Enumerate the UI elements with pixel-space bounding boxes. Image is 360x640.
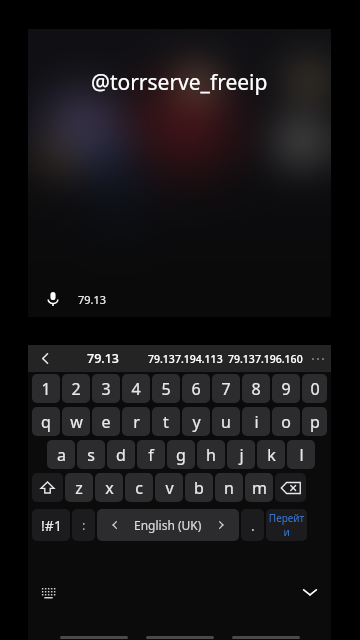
button[interactable]: 6 — [182, 374, 210, 403]
staticText: c — [135, 477, 143, 499]
staticText: l — [299, 444, 304, 466]
button[interactable]: u — [212, 407, 240, 436]
button[interactable]: z — [65, 473, 93, 502]
staticText: i — [254, 411, 259, 433]
staticText: 2 — [71, 378, 81, 400]
button[interactable]: 4 — [122, 374, 150, 403]
button[interactable]: j — [227, 440, 255, 469]
staticText: q — [41, 411, 51, 433]
button[interactable]: i — [242, 407, 270, 436]
button[interactable]: a — [47, 440, 75, 469]
staticText: 9 — [281, 378, 291, 400]
staticText: 79.137.196.160 — [228, 352, 303, 366]
button[interactable]: 2 — [62, 374, 90, 403]
button[interactable]: 5 — [152, 374, 180, 403]
button[interactable]: 0 — [302, 374, 327, 403]
button[interactable]: g — [167, 440, 195, 469]
staticText: 0 — [310, 378, 320, 400]
button[interactable]: 79.137.196.160 — [226, 345, 304, 372]
button[interactable]: 79.13 — [62, 345, 144, 372]
staticText: 7 — [221, 378, 231, 400]
button[interactable]: English (UK) — [97, 509, 239, 541]
button[interactable]: !#1 — [32, 509, 70, 541]
button[interactable]: 79.137.194.113 — [144, 345, 226, 372]
button[interactable]: k — [257, 440, 285, 469]
button[interactable]: Back — [28, 345, 62, 372]
staticText: s — [87, 444, 95, 466]
button[interactable]: 1 — [32, 374, 60, 403]
staticText: d — [116, 444, 126, 466]
staticText: u — [221, 411, 231, 433]
staticText: w — [70, 411, 83, 433]
staticText: v — [165, 477, 174, 499]
staticText: a — [57, 444, 66, 466]
staticText: English (UK) — [134, 517, 202, 533]
staticText: p — [310, 411, 320, 433]
staticText: e — [101, 411, 111, 433]
staticText: 6 — [191, 378, 201, 400]
staticText: y — [192, 411, 201, 433]
button[interactable]: x — [95, 473, 123, 502]
button[interactable]: b — [185, 473, 213, 502]
button[interactable] — [32, 473, 63, 502]
button[interactable]: More suggestions — [304, 345, 331, 372]
button[interactable]: 9 — [272, 374, 300, 403]
button[interactable]: 8 — [242, 374, 270, 403]
button[interactable]: t — [152, 407, 180, 436]
staticText: n — [224, 477, 234, 499]
button[interactable]: h — [197, 440, 225, 469]
button[interactable]: p — [302, 407, 327, 436]
staticText: r — [133, 411, 140, 433]
button[interactable]: e — [92, 407, 120, 436]
button[interactable]: Перейти — [266, 509, 307, 541]
button[interactable]: 3 — [92, 374, 120, 403]
button[interactable]: Switch keyboard — [34, 578, 62, 606]
button[interactable]: 7 — [212, 374, 240, 403]
button[interactable]: r — [122, 407, 150, 436]
staticText: !#1 — [41, 516, 62, 535]
button[interactable]: d — [107, 440, 135, 469]
button[interactable]: f — [137, 440, 165, 469]
staticText: 79.13 — [78, 292, 107, 307]
staticText: 3 — [101, 378, 111, 400]
button[interactable]: Hide keyboard — [295, 577, 325, 607]
staticText: t — [163, 411, 169, 433]
staticText: 4 — [131, 378, 141, 400]
staticText: 79.13 — [87, 350, 120, 367]
button[interactable] — [275, 473, 306, 502]
button[interactable]: l — [287, 440, 315, 469]
button[interactable]: n — [215, 473, 243, 502]
button[interactable]: c — [125, 473, 153, 502]
button[interactable]: v — [155, 473, 183, 502]
staticText: Перейти — [266, 511, 307, 539]
button[interactable]: . — [241, 509, 264, 541]
staticText: . — [251, 516, 255, 535]
staticText: 1 — [41, 378, 51, 400]
button[interactable]: Voice input — [40, 286, 66, 312]
button[interactable]: q — [32, 407, 60, 436]
staticText: x — [105, 477, 114, 499]
staticText: @torrserve_freeip — [91, 68, 268, 97]
staticText: o — [281, 411, 291, 433]
button[interactable]: s — [77, 440, 105, 469]
staticText: g — [176, 444, 186, 466]
staticText: f — [148, 444, 154, 466]
staticText: m — [252, 477, 267, 499]
staticText: 5 — [161, 378, 171, 400]
button[interactable]: w — [62, 407, 90, 436]
staticText: 79.137.194.113 — [148, 352, 223, 366]
staticText: : — [82, 516, 86, 534]
staticText: h — [206, 444, 216, 466]
staticText: z — [75, 477, 83, 499]
staticText: b — [194, 477, 204, 499]
button[interactable]: m — [245, 473, 273, 502]
button[interactable]: o — [272, 407, 300, 436]
staticText: 8 — [251, 378, 261, 400]
button[interactable]: : — [72, 509, 95, 541]
staticText: j — [239, 444, 244, 466]
staticText: k — [267, 444, 276, 466]
button[interactable]: y — [182, 407, 210, 436]
